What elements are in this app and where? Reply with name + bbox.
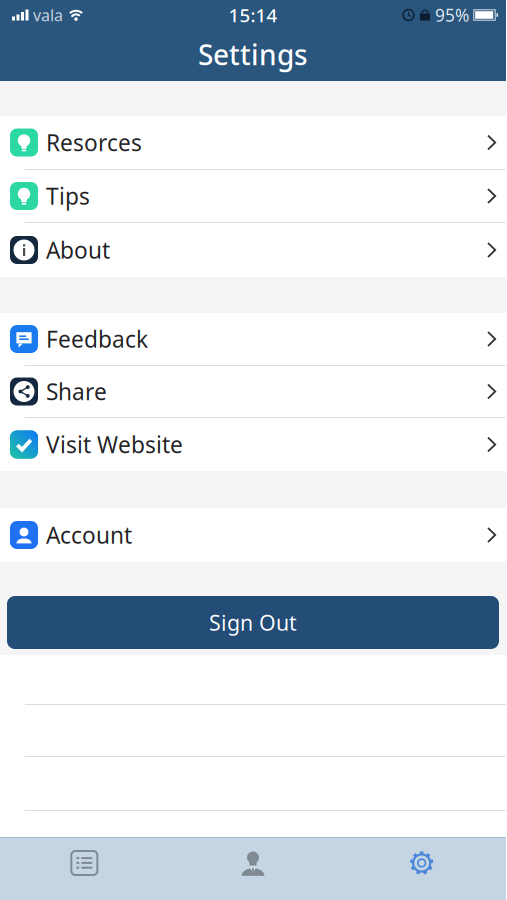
button[interactable]: Tips [0, 170, 506, 223]
staticText: 15:14 [228, 3, 277, 27]
staticText: Settings [198, 36, 308, 73]
staticText: About [46, 235, 110, 265]
staticText: Tips [46, 181, 90, 211]
button[interactable] [169, 837, 337, 900]
button[interactable]: Feedback [0, 313, 506, 366]
button[interactable]: Sign Out [0, 596, 506, 649]
button[interactable] [337, 837, 506, 900]
staticText: Visit Website [46, 429, 183, 459]
staticText: Account [46, 520, 132, 550]
button[interactable]: Visit Website [0, 418, 506, 471]
staticText: 95% [435, 3, 469, 26]
staticText: Feedback [46, 324, 148, 354]
staticText: Resorces [46, 127, 142, 157]
staticText: vala [33, 4, 63, 26]
button[interactable]: Resorces [0, 116, 506, 170]
staticText: Share [46, 376, 107, 406]
button[interactable]: Share [0, 366, 506, 418]
button[interactable] [0, 837, 169, 900]
button[interactable]: About [0, 223, 506, 277]
staticText: Sign Out [209, 608, 297, 637]
button[interactable]: Account [0, 508, 506, 562]
